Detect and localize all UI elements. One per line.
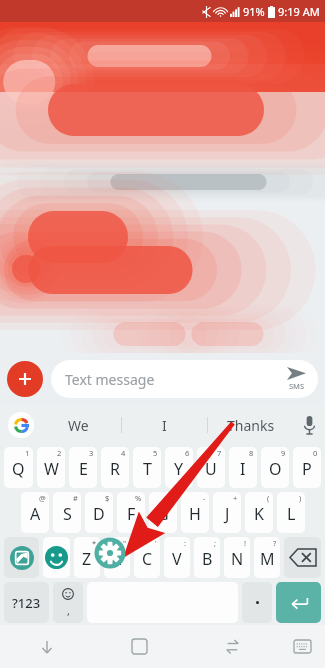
- button[interactable]: Symbols: [4, 582, 49, 623]
- staticText: Y: [174, 458, 184, 480]
- staticText: Thanks: [227, 416, 275, 435]
- staticText: P: [302, 458, 312, 480]
- staticText: H: [189, 503, 201, 525]
- button[interactable]: Voice input: [293, 405, 325, 445]
- button[interactable]: Switch keyboard: [279, 625, 325, 668]
- staticText: SMS: [289, 381, 305, 391]
- staticText: 3: [89, 448, 94, 458]
- staticText: $: [105, 493, 110, 503]
- staticText: 0: [313, 448, 318, 458]
- staticText: F: [127, 503, 136, 525]
- button[interactable]: Add attachment: [7, 361, 43, 397]
- staticText: E: [79, 458, 88, 480]
- staticText: J: [225, 503, 230, 525]
- staticText: C: [142, 548, 153, 570]
- button[interactable]: V: [164, 537, 190, 578]
- staticText: 4: [121, 448, 126, 458]
- button[interactable]: Q: [4, 447, 33, 488]
- staticText: ;: [214, 538, 217, 548]
- staticText: 5: [153, 448, 158, 458]
- button[interactable]: Shift: [4, 537, 39, 578]
- button[interactable]: K: [245, 492, 273, 533]
- button[interactable]: I: [229, 447, 257, 488]
- staticText: ': [155, 538, 157, 548]
- button[interactable]: Backspace: [284, 537, 321, 578]
- button[interactable]: Emoji and comma: [53, 582, 83, 623]
- button[interactable]: B: [194, 537, 220, 578]
- button[interactable]: We: [35, 405, 121, 445]
- staticText: W: [44, 458, 59, 480]
- button[interactable]: P: [293, 447, 321, 488]
- button[interactable]: U: [197, 447, 225, 488]
- button[interactable]: Send SMS: [274, 360, 318, 398]
- staticText: O: [269, 458, 282, 480]
- staticText: -: [203, 493, 206, 503]
- staticText: ): [299, 493, 302, 503]
- staticText: D: [93, 503, 105, 525]
- button[interactable]: Recents: [186, 625, 279, 668]
- staticText: N: [231, 548, 244, 570]
- staticText: X: [112, 548, 122, 570]
- button[interactable]: O: [261, 447, 289, 488]
- staticText: Z: [82, 548, 92, 570]
- button[interactable]: Period: [242, 582, 272, 623]
- staticText: Text message: [65, 370, 155, 389]
- button[interactable]: Text message: [51, 360, 318, 398]
- button[interactable]: E: [69, 447, 97, 488]
- button[interactable]: I: [122, 405, 207, 445]
- button[interactable]: Thanks: [208, 405, 293, 445]
- staticText: ,: [67, 603, 70, 618]
- staticText: R: [110, 458, 120, 480]
- staticText: Q: [12, 458, 25, 480]
- staticText: T: [143, 458, 152, 480]
- button[interactable]: T: [133, 447, 161, 488]
- button[interactable]: Google: [8, 412, 34, 438]
- staticText: I: [240, 458, 246, 480]
- button[interactable]: R: [101, 447, 129, 488]
- staticText: 9: [281, 448, 286, 458]
- staticText: 1: [25, 448, 30, 458]
- staticText: K: [254, 503, 264, 525]
- staticText: B: [202, 548, 213, 570]
- button[interactable]: W: [37, 447, 65, 488]
- button[interactable]: Z: [74, 537, 100, 578]
- staticText: ?123: [12, 594, 41, 612]
- button[interactable]: X: [104, 537, 130, 578]
- staticText: G: [157, 503, 169, 525]
- button[interactable]: Emoji: [43, 537, 70, 578]
- staticText: V: [172, 548, 182, 570]
- staticText: :: [184, 538, 187, 548]
- button[interactable]: N: [224, 537, 250, 578]
- button[interactable]: A: [21, 492, 49, 533]
- button[interactable]: C: [134, 537, 160, 578]
- staticText: S: [63, 503, 72, 525]
- button[interactable]: M: [254, 537, 280, 578]
- button[interactable]: L: [277, 492, 305, 533]
- button[interactable]: Home: [93, 625, 186, 668]
- staticText: @: [39, 493, 46, 503]
- staticText: We: [68, 416, 89, 435]
- button[interactable]: H: [181, 492, 209, 533]
- button[interactable]: S: [53, 492, 81, 533]
- button[interactable]: Hide keyboard: [0, 625, 93, 668]
- staticText: %: [135, 493, 142, 503]
- staticText: U: [205, 458, 217, 480]
- button[interactable]: Enter: [276, 582, 321, 623]
- staticText: 8: [249, 448, 254, 458]
- staticText: ?: [273, 538, 277, 548]
- button[interactable]: G: [149, 492, 177, 533]
- staticText: I: [162, 416, 167, 435]
- staticText: ": [123, 538, 127, 548]
- staticText: 9:19 AM: [278, 4, 320, 19]
- button[interactable]: D: [85, 492, 113, 533]
- button[interactable]: J: [213, 492, 241, 533]
- button[interactable]: F: [117, 492, 145, 533]
- staticText: 6: [185, 448, 190, 458]
- staticText: 2: [57, 448, 62, 458]
- button[interactable]: Y: [165, 447, 193, 488]
- staticText: 91%: [243, 4, 265, 19]
- staticText: !: [244, 538, 247, 548]
- staticText: A: [30, 503, 41, 525]
